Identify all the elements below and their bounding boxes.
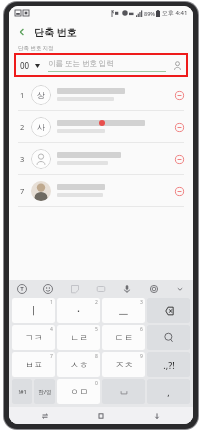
- staticText: 7: [20, 186, 25, 196]
- staticText: 3: [140, 299, 143, 306]
- button[interactable]: 3: [9, 143, 193, 175]
- button[interactable]: Select contact: [170, 58, 184, 72]
- staticText: ㄴㄹ: [70, 332, 88, 343]
- button[interactable]: ,: [147, 379, 190, 404]
- button[interactable]: 7: [9, 175, 193, 207]
- staticText: ,: [167, 386, 170, 398]
- button[interactable]: Hide keyboard: [137, 407, 177, 424]
- staticText: ㅡ: [118, 304, 129, 318]
- staticText: ㅅㅎ: [70, 359, 88, 370]
- staticText: 2: [95, 299, 98, 306]
- staticText: !#1: [18, 388, 27, 395]
- button[interactable]: Remove: [172, 120, 186, 134]
- button[interactable]: 1: [9, 79, 193, 111]
- button[interactable]: Remove: [172, 184, 186, 198]
- button[interactable]: Collapse: [172, 281, 188, 297]
- button[interactable]: Backspace: [147, 298, 190, 323]
- button[interactable]: 한/영: [34, 379, 55, 404]
- staticText: 오후 4:41: [162, 9, 188, 17]
- button[interactable]: 이름 또는 번호 입력: [48, 58, 166, 72]
- staticText: 상: [37, 90, 45, 100]
- button[interactable]: ㅣ: [12, 298, 55, 323]
- staticText: 00: [20, 60, 30, 71]
- button[interactable]: Back: [13, 23, 31, 41]
- button[interactable]: Stickers: [67, 281, 83, 297]
- button[interactable]: Remove: [172, 88, 186, 102]
- button[interactable]: Recents: [25, 407, 65, 424]
- button[interactable]: ㅂㅍ: [12, 352, 55, 377]
- staticText: ·: [77, 303, 80, 318]
- button[interactable]: Emoji: [40, 281, 56, 297]
- button[interactable]: ㅈㅊ: [102, 352, 145, 377]
- staticText: 89%: [144, 10, 155, 17]
- staticText: 이름 또는 번호 입력: [48, 58, 114, 68]
- staticText: ㄷㅌ: [115, 332, 133, 343]
- staticText: 6: [140, 326, 143, 333]
- button[interactable]: ㅅㅎ: [57, 352, 100, 377]
- button[interactable]: ㄴㄹ: [57, 325, 100, 350]
- staticText: 7: [50, 353, 53, 360]
- staticText: 1: [50, 299, 53, 306]
- staticText: 단축 번호 지정: [18, 44, 54, 52]
- staticText: 5: [95, 326, 98, 333]
- button[interactable]: Remove: [172, 152, 186, 166]
- button[interactable]: Home: [81, 407, 121, 424]
- button[interactable]: Translate: [14, 281, 30, 297]
- button[interactable]: 2: [9, 111, 193, 143]
- staticText: ㅇㅁ: [70, 386, 88, 397]
- staticText: 사: [37, 122, 45, 132]
- staticText: 4: [50, 326, 53, 333]
- staticText: 1: [20, 90, 25, 100]
- staticText: 8: [95, 353, 98, 360]
- button[interactable]: Search: [147, 325, 190, 350]
- staticText: 0: [95, 380, 98, 387]
- button[interactable]: 00: [18, 60, 42, 71]
- staticText: ㅈㅊ: [115, 359, 133, 370]
- staticText: ㅂㅍ: [25, 359, 43, 370]
- button[interactable]: !#1: [12, 379, 32, 404]
- button[interactable]: ㄷㅌ: [102, 325, 145, 350]
- button[interactable]: ㅡ: [102, 298, 145, 323]
- staticText: .,?!: [163, 359, 175, 371]
- button[interactable]: ·: [57, 298, 100, 323]
- button[interactable]: GIF: [93, 281, 109, 297]
- button[interactable]: ㅇㅁ: [57, 379, 100, 404]
- staticText: 3: [20, 154, 25, 164]
- staticText: 한/영: [38, 388, 52, 396]
- staticText: 9: [140, 353, 143, 360]
- staticText: ㅣ: [28, 304, 39, 318]
- staticText: ㄱㅋ: [25, 332, 43, 343]
- button[interactable]: Space: [102, 379, 145, 404]
- button[interactable]: Settings: [146, 281, 162, 297]
- button[interactable]: Voice input: [119, 281, 135, 297]
- button[interactable]: .,?!: [147, 352, 190, 377]
- staticText: 단축 번호: [34, 25, 77, 39]
- button[interactable]: ㄱㅋ: [12, 325, 55, 350]
- staticText: 2: [20, 122, 25, 132]
